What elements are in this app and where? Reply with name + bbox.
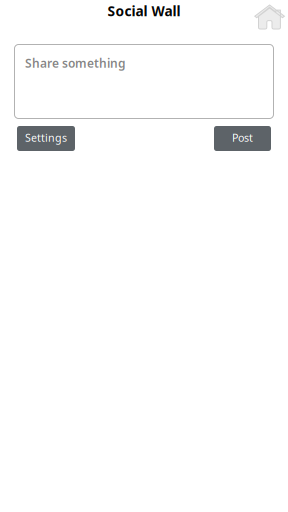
staticText: Post [232,130,253,145]
button[interactable]: Share something [14,44,274,119]
staticText: Social Wall [107,2,180,20]
button[interactable]: Home [254,4,285,30]
button[interactable]: Post [214,126,271,151]
button[interactable]: Settings [17,126,75,151]
staticText: Share something [25,55,126,71]
staticText: Settings [25,130,67,145]
